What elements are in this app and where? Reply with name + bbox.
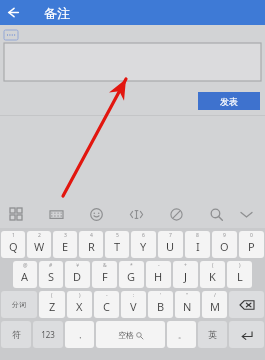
staticText: R	[88, 239, 95, 254]
staticText: J	[184, 269, 188, 284]
staticText: #	[49, 262, 53, 269]
staticText: D	[73, 269, 82, 284]
staticText: H	[154, 269, 163, 284]
button[interactable]: Emoji	[86, 204, 106, 224]
staticText: Y	[140, 239, 147, 254]
staticText: 符	[12, 329, 21, 340]
button[interactable]: "	[175, 291, 200, 318]
staticText: G	[127, 269, 136, 284]
staticText: V	[130, 299, 137, 314]
staticText: M	[210, 299, 220, 314]
button[interactable]: ￥	[65, 261, 90, 288]
staticText: 英	[208, 329, 217, 340]
button[interactable]: 9	[212, 231, 237, 258]
staticText: "	[186, 292, 189, 299]
button[interactable]: 2	[27, 231, 51, 258]
staticText: 123	[41, 329, 55, 340]
button[interactable]: :	[121, 291, 146, 318]
button[interactable]: (	[200, 261, 225, 288]
button[interactable]: 分词	[1, 291, 37, 318]
button[interactable]: /	[202, 291, 227, 318]
staticText: -	[158, 262, 160, 269]
staticText: N	[183, 299, 192, 314]
staticText: W	[34, 239, 45, 254]
staticText: U	[166, 239, 175, 254]
staticText: 2	[38, 232, 41, 239]
staticText: T	[114, 239, 121, 254]
button[interactable]	[4, 43, 261, 81]
staticText: -	[106, 292, 108, 299]
staticText: 4	[90, 232, 93, 239]
staticText: I	[196, 239, 200, 254]
button[interactable]: Backspace	[229, 291, 264, 318]
button[interactable]: 4	[79, 231, 103, 258]
button[interactable]: *	[119, 261, 144, 288]
staticText: X	[76, 299, 83, 314]
staticText: K	[209, 269, 216, 284]
button[interactable]: 5	[105, 231, 129, 258]
staticText: *	[130, 262, 133, 269]
button[interactable]: 英	[198, 321, 227, 348]
button[interactable]: 发表	[198, 92, 260, 110]
button[interactable]: -	[146, 261, 171, 288]
button[interactable]: 3	[53, 231, 77, 258]
staticText: /	[214, 292, 216, 299]
staticText: ￥	[75, 262, 80, 268]
staticText: 6	[142, 232, 145, 239]
staticText: 8	[196, 232, 199, 239]
button[interactable]: 7	[158, 231, 183, 258]
staticText: Z	[49, 299, 56, 314]
staticText: 1	[12, 232, 15, 239]
button[interactable]: Collapse	[237, 205, 255, 223]
button[interactable]: )	[67, 291, 92, 318]
staticText: :	[133, 292, 135, 299]
button[interactable]: '	[148, 291, 173, 318]
button[interactable]: @	[13, 261, 37, 288]
staticText: Q	[9, 239, 18, 254]
staticText: 发表	[220, 96, 238, 107]
button[interactable]: 空格	[96, 321, 165, 348]
staticText: (	[212, 262, 214, 269]
button[interactable]: ，	[65, 321, 94, 348]
staticText: (	[51, 292, 53, 299]
button[interactable]: 。	[167, 321, 196, 348]
button[interactable]: Back	[0, 0, 25, 25]
staticText: B	[157, 299, 165, 314]
button[interactable]: )	[227, 261, 252, 288]
staticText: @	[23, 262, 28, 269]
staticText: 0	[250, 232, 253, 239]
staticText: ，	[76, 330, 84, 340]
staticText: )	[239, 262, 241, 269]
button[interactable]: -	[94, 291, 119, 318]
button[interactable]: Enter	[229, 321, 264, 348]
button[interactable]: Attach	[166, 204, 186, 224]
staticText: P	[248, 239, 255, 254]
button[interactable]: (	[39, 291, 65, 318]
staticText: 。	[178, 330, 186, 340]
button[interactable]: 123	[33, 321, 63, 348]
button[interactable]: 6	[131, 231, 156, 258]
staticText: 9	[223, 232, 226, 239]
staticText: +	[184, 262, 187, 269]
button[interactable]: 1	[1, 231, 25, 258]
button[interactable]: 符	[1, 321, 31, 348]
staticText: &	[103, 262, 107, 269]
button[interactable]: Search	[206, 204, 226, 224]
staticText: O	[220, 239, 229, 254]
button[interactable]: 8	[185, 231, 210, 258]
button[interactable]: Text	[126, 204, 146, 224]
staticText: F	[102, 269, 108, 284]
staticText: L	[237, 269, 243, 284]
button[interactable]: Apps	[6, 204, 26, 224]
staticText: 空格	[118, 330, 134, 340]
button[interactable]: Keyboard	[46, 204, 66, 224]
staticText: )	[79, 292, 81, 299]
button[interactable]: &	[92, 261, 117, 288]
staticText: 备注	[44, 5, 70, 21]
staticText: A	[21, 269, 29, 284]
button[interactable]: +	[173, 261, 198, 288]
button[interactable]: 0	[239, 231, 264, 258]
button[interactable]: #	[39, 261, 63, 288]
staticText: '	[160, 292, 162, 299]
staticText: 7	[169, 232, 172, 239]
